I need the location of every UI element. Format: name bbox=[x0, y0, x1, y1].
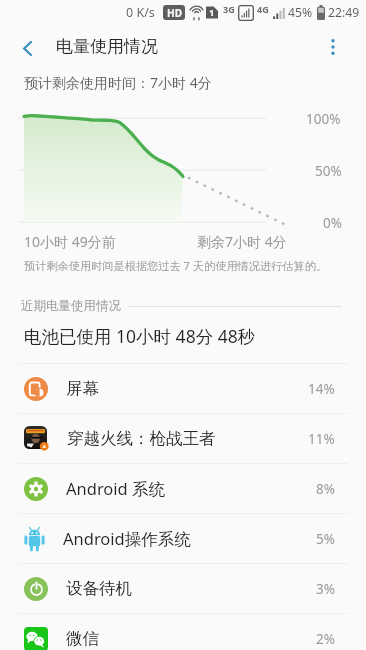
staticText: 11% bbox=[308, 430, 335, 448]
staticText: 4G bbox=[257, 3, 269, 15]
button[interactable]: Back bbox=[8, 29, 46, 67]
button[interactable]: Android 系统 bbox=[0, 464, 366, 513]
staticText: 0% bbox=[323, 214, 342, 232]
staticText: Android操作系统 bbox=[63, 527, 191, 550]
staticText: 14% bbox=[308, 380, 335, 398]
button[interactable]: 设备待机 bbox=[0, 564, 366, 613]
staticText: HD bbox=[167, 6, 182, 20]
staticText: 电池已使用 10小时 48分 48秒 bbox=[24, 324, 256, 348]
staticText: 3% bbox=[316, 580, 335, 598]
staticText: 设备待机 bbox=[66, 578, 132, 599]
staticText: 10小时 49分前 bbox=[24, 232, 116, 251]
staticText: 预计剩余使用时间是根据您过去 7 天的使用情况进行估算的。 bbox=[24, 258, 328, 273]
staticText: 微信 bbox=[66, 628, 99, 649]
staticText: 0 K/s bbox=[126, 4, 155, 21]
staticText: 3G bbox=[223, 3, 235, 15]
button[interactable]: 微信 bbox=[0, 614, 366, 650]
staticText: 近期电量使用情况 bbox=[21, 298, 121, 314]
staticText: 电量使用情况 bbox=[56, 36, 158, 57]
staticText: Android 系统 bbox=[66, 477, 166, 500]
staticText: 穿越火线：枪战王者 bbox=[67, 428, 216, 449]
button[interactable]: 穿越火线：枪战王者 bbox=[0, 414, 366, 463]
staticText: 屏幕 bbox=[66, 378, 99, 399]
button[interactable]: More options bbox=[314, 28, 352, 66]
staticText: 22:49 bbox=[328, 4, 360, 21]
button[interactable]: 屏幕 bbox=[0, 364, 366, 413]
staticText: 100% bbox=[306, 110, 341, 128]
button[interactable]: Android操作系统 bbox=[0, 514, 366, 563]
staticText: 1 bbox=[209, 6, 215, 19]
staticText: 5% bbox=[316, 530, 335, 548]
staticText: 50% bbox=[315, 162, 342, 180]
staticText: 8% bbox=[316, 480, 335, 498]
staticText: 2% bbox=[316, 630, 335, 648]
staticText: 预计剩余使用时间：7小时 4分 bbox=[24, 73, 212, 92]
staticText: 45% bbox=[288, 4, 313, 21]
staticText: 剩余7小时 4分 bbox=[197, 232, 287, 251]
